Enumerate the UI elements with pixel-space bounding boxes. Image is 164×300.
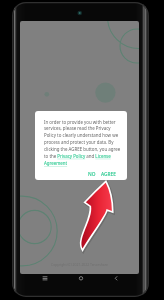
staticText: NO [88,171,96,178]
staticText: Copyright (C) 2021-2022 Tenorshare [51,262,109,267]
button[interactable]: Recents [32,270,58,286]
button[interactable]: NO [85,169,99,180]
button[interactable]: AGREE [99,169,120,180]
staticText: In order to provide you with better serv… [44,119,121,167]
button[interactable]: Back [103,270,129,286]
button[interactable]: Home [68,270,94,286]
staticText: AGREE [101,171,116,178]
